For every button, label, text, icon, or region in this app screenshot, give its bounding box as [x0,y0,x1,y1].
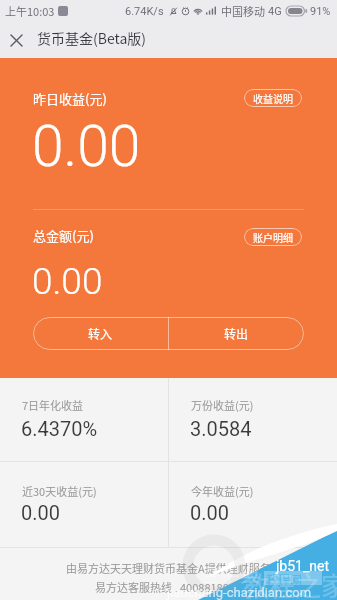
staticText: 查字典 [200,559,260,588]
staticText: 0.00 [32,113,141,180]
staticText: 中国移动 [221,3,265,19]
staticText: 近30天收益(元) [22,483,97,499]
staticText: jb51_net [276,558,329,574]
button[interactable]: 收益说明 [244,89,302,107]
staticText: 4G [268,5,282,18]
staticText: 由易方达天天理财货币基金A提供理财服务 [66,560,271,576]
staticText: 货币基金(Beta版) [37,28,147,48]
staticText: 账户明细 [253,230,293,244]
staticText: 易方达客服热线 . 4008818088 [95,579,242,595]
staticText: 0.00 [190,501,229,524]
staticText: jiaocheng-chazidian.com [167,585,312,600]
button[interactable]: 转出 [169,317,304,350]
button[interactable]: 今年收益(元) [169,462,337,547]
staticText: 6.74K/s [125,5,164,18]
button[interactable]: 万份收益(元) [169,378,337,461]
button[interactable]: 账户明细 [244,228,302,246]
staticText: 万份收益(元) [191,397,254,413]
button[interactable]: 7日年化收益 [0,378,168,461]
staticText: 总金额(元) [33,226,94,245]
staticText: 教程之家 [243,566,337,600]
staticText: 转出 [224,325,249,342]
staticText: 6.4370% [21,417,98,440]
staticText: 昨日收益(元) [33,89,107,108]
staticText: 今年收益(元) [191,483,254,499]
staticText: 上午10:03 [5,3,55,19]
staticText: 收益说明 [253,91,293,105]
button[interactable]: 近30天收益(元) [0,462,168,547]
staticText: 3.0584 [190,417,252,440]
staticText: 7日年化收益 [22,397,84,413]
staticText: 91% [310,5,331,18]
staticText: 0.00 [21,501,60,524]
staticText: 教程网 [266,571,303,585]
button[interactable]: 转入 [33,317,168,350]
staticText: 转入 [88,325,113,342]
staticText: 0.00 [32,260,103,303]
button[interactable]: Close [9,33,23,47]
